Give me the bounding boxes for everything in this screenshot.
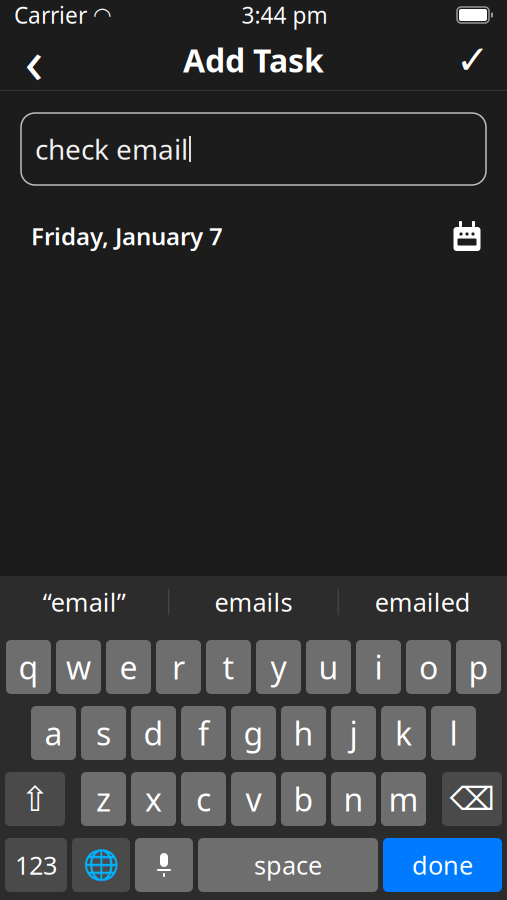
- button[interactable]: k: [381, 706, 426, 760]
- button[interactable]: f: [181, 706, 226, 760]
- staticText: emailed: [375, 585, 471, 619]
- button[interactable]: j: [331, 706, 376, 760]
- button[interactable]: Shift: [5, 772, 65, 826]
- staticText: check email: [35, 130, 188, 168]
- staticText: done: [412, 848, 473, 882]
- button[interactable]: 123: [5, 838, 67, 892]
- staticText: ⌫: [449, 781, 494, 817]
- staticText: j: [349, 712, 357, 754]
- button[interactable]: space: [198, 838, 378, 892]
- button[interactable]: v: [231, 772, 276, 826]
- staticText: e: [119, 646, 137, 688]
- staticText: Friday, January 7: [31, 220, 223, 252]
- button[interactable]: Save task: [445, 31, 501, 89]
- staticText: u: [318, 646, 338, 688]
- button[interactable]: l: [431, 706, 476, 760]
- button[interactable]: Dictation: [135, 838, 193, 892]
- button[interactable]: r: [156, 640, 201, 694]
- staticText: c: [196, 778, 211, 820]
- staticText: 123: [15, 848, 57, 882]
- button[interactable]: emailed: [339, 576, 507, 628]
- staticText: Add Task: [183, 39, 324, 81]
- staticText: p: [468, 646, 488, 688]
- button[interactable]: m: [381, 772, 426, 826]
- staticText: k: [395, 712, 412, 754]
- button[interactable]: q: [6, 640, 51, 694]
- button[interactable]: h: [281, 706, 326, 760]
- staticText: ⇧: [20, 779, 49, 819]
- staticText: m: [388, 778, 418, 820]
- staticText: v: [245, 778, 261, 820]
- staticText: 🌐: [82, 848, 119, 882]
- button[interactable]: Next keyboard: [72, 838, 130, 892]
- staticText: 3:44 pm: [241, 0, 327, 30]
- staticText: s: [96, 712, 111, 754]
- staticText: x: [145, 778, 162, 820]
- button[interactable]: e: [106, 640, 151, 694]
- staticText: q: [18, 646, 38, 688]
- staticText: ✓: [456, 37, 490, 83]
- button[interactable]: z: [81, 772, 126, 826]
- button[interactable]: g: [231, 706, 276, 760]
- button[interactable]: c: [181, 772, 226, 826]
- staticText: d: [143, 712, 163, 754]
- staticText: g: [243, 712, 263, 754]
- button[interactable]: n: [331, 772, 376, 826]
- staticText: o: [419, 646, 438, 688]
- staticText: a: [44, 712, 62, 754]
- button[interactable]: p: [456, 640, 501, 694]
- staticText: ‹: [24, 19, 43, 101]
- button[interactable]: t: [206, 640, 251, 694]
- button[interactable]: b: [281, 772, 326, 826]
- button[interactable]: emails: [169, 576, 338, 628]
- button[interactable]: i: [356, 640, 401, 694]
- button[interactable]: “email”: [0, 576, 168, 628]
- button[interactable]: x: [131, 772, 176, 826]
- button[interactable]: o: [406, 640, 451, 694]
- staticText: l: [449, 712, 457, 754]
- button[interactable]: Choose date: [444, 213, 490, 259]
- staticText: i: [374, 646, 382, 688]
- staticText: w: [66, 646, 91, 688]
- staticText: space: [254, 848, 322, 882]
- staticText: r: [172, 646, 185, 688]
- button[interactable]: Delete: [442, 772, 502, 826]
- button[interactable]: w: [56, 640, 101, 694]
- staticText: emails: [214, 585, 292, 619]
- button[interactable]: u: [306, 640, 351, 694]
- staticText: y: [270, 646, 286, 688]
- staticText: t: [222, 646, 234, 688]
- staticText: Carrier: [14, 0, 87, 30]
- button[interactable]: y: [256, 640, 301, 694]
- staticText: ◠: [93, 3, 112, 27]
- button[interactable]: done: [383, 838, 502, 892]
- button[interactable]: s: [81, 706, 126, 760]
- staticText: n: [343, 778, 363, 820]
- staticText: h: [293, 712, 313, 754]
- button[interactable]: Back: [6, 31, 62, 89]
- staticText: z: [96, 778, 111, 820]
- button[interactable]: d: [131, 706, 176, 760]
- staticText: b: [293, 778, 313, 820]
- staticText: f: [198, 712, 209, 754]
- staticText: “email”: [43, 585, 126, 619]
- button[interactable]: a: [31, 706, 76, 760]
